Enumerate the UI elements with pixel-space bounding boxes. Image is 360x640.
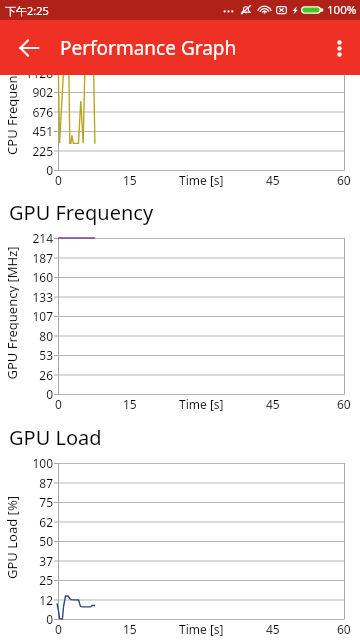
staticText: 0 <box>46 386 53 402</box>
staticText: GPU Load [%] <box>3 496 19 579</box>
staticText: 53 <box>39 347 53 363</box>
staticText: Time [s] <box>179 172 224 188</box>
staticText: 160 <box>32 269 53 285</box>
staticText: 0 <box>46 611 53 627</box>
staticText: 100 <box>32 455 53 471</box>
staticText: 37 <box>39 553 53 569</box>
staticText: 62 <box>39 514 53 530</box>
staticText: GPU Frequency <box>9 199 154 226</box>
staticText: Time [s] <box>179 396 224 412</box>
staticText: 100% <box>327 2 357 18</box>
staticText: 75 <box>39 494 53 510</box>
staticText: 45 <box>266 396 280 412</box>
staticText: 45 <box>266 172 280 188</box>
staticText: 12 <box>39 592 53 608</box>
staticText: 60 <box>337 621 351 637</box>
staticText: 50 <box>39 533 53 549</box>
staticText: 80 <box>39 328 53 344</box>
staticText: 187 <box>32 250 53 266</box>
staticText: 902 <box>32 84 53 100</box>
staticText: 1804 <box>25 6 53 22</box>
staticText: 25 <box>39 572 53 588</box>
staticText: 60 <box>337 396 351 412</box>
staticText: 1578 <box>25 26 53 42</box>
staticText: 214 <box>32 230 53 246</box>
staticText: 0 <box>55 621 62 637</box>
staticText: 0 <box>55 396 62 412</box>
staticText: 15 <box>123 396 137 412</box>
staticText: 60 <box>337 172 351 188</box>
staticText: CPU Frequency [MHz] <box>3 23 19 155</box>
staticText: 26 <box>39 367 53 383</box>
staticText: 1128 <box>25 65 53 81</box>
staticText: 15 <box>123 172 137 188</box>
staticText: Performance Graph <box>60 35 237 61</box>
button[interactable]: More options <box>320 29 358 67</box>
staticText: 15 <box>123 621 137 637</box>
staticText: 0 <box>55 172 62 188</box>
staticText: 下午2:25 <box>5 3 49 18</box>
staticText: 87 <box>39 475 53 491</box>
button[interactable]: Back <box>10 29 48 67</box>
staticText: Time [s] <box>179 621 224 637</box>
staticText: 676 <box>32 104 53 120</box>
staticText: 1353 <box>25 45 53 61</box>
staticText: 0 <box>46 162 53 178</box>
staticText: 133 <box>32 289 53 305</box>
staticText: 107 <box>32 308 53 324</box>
staticText: 451 <box>32 123 53 139</box>
staticText: 45 <box>266 621 280 637</box>
staticText: 225 <box>32 143 53 159</box>
staticText: GPU Load <box>9 424 102 451</box>
staticText: GPU Frequency [MHz] <box>3 246 19 380</box>
